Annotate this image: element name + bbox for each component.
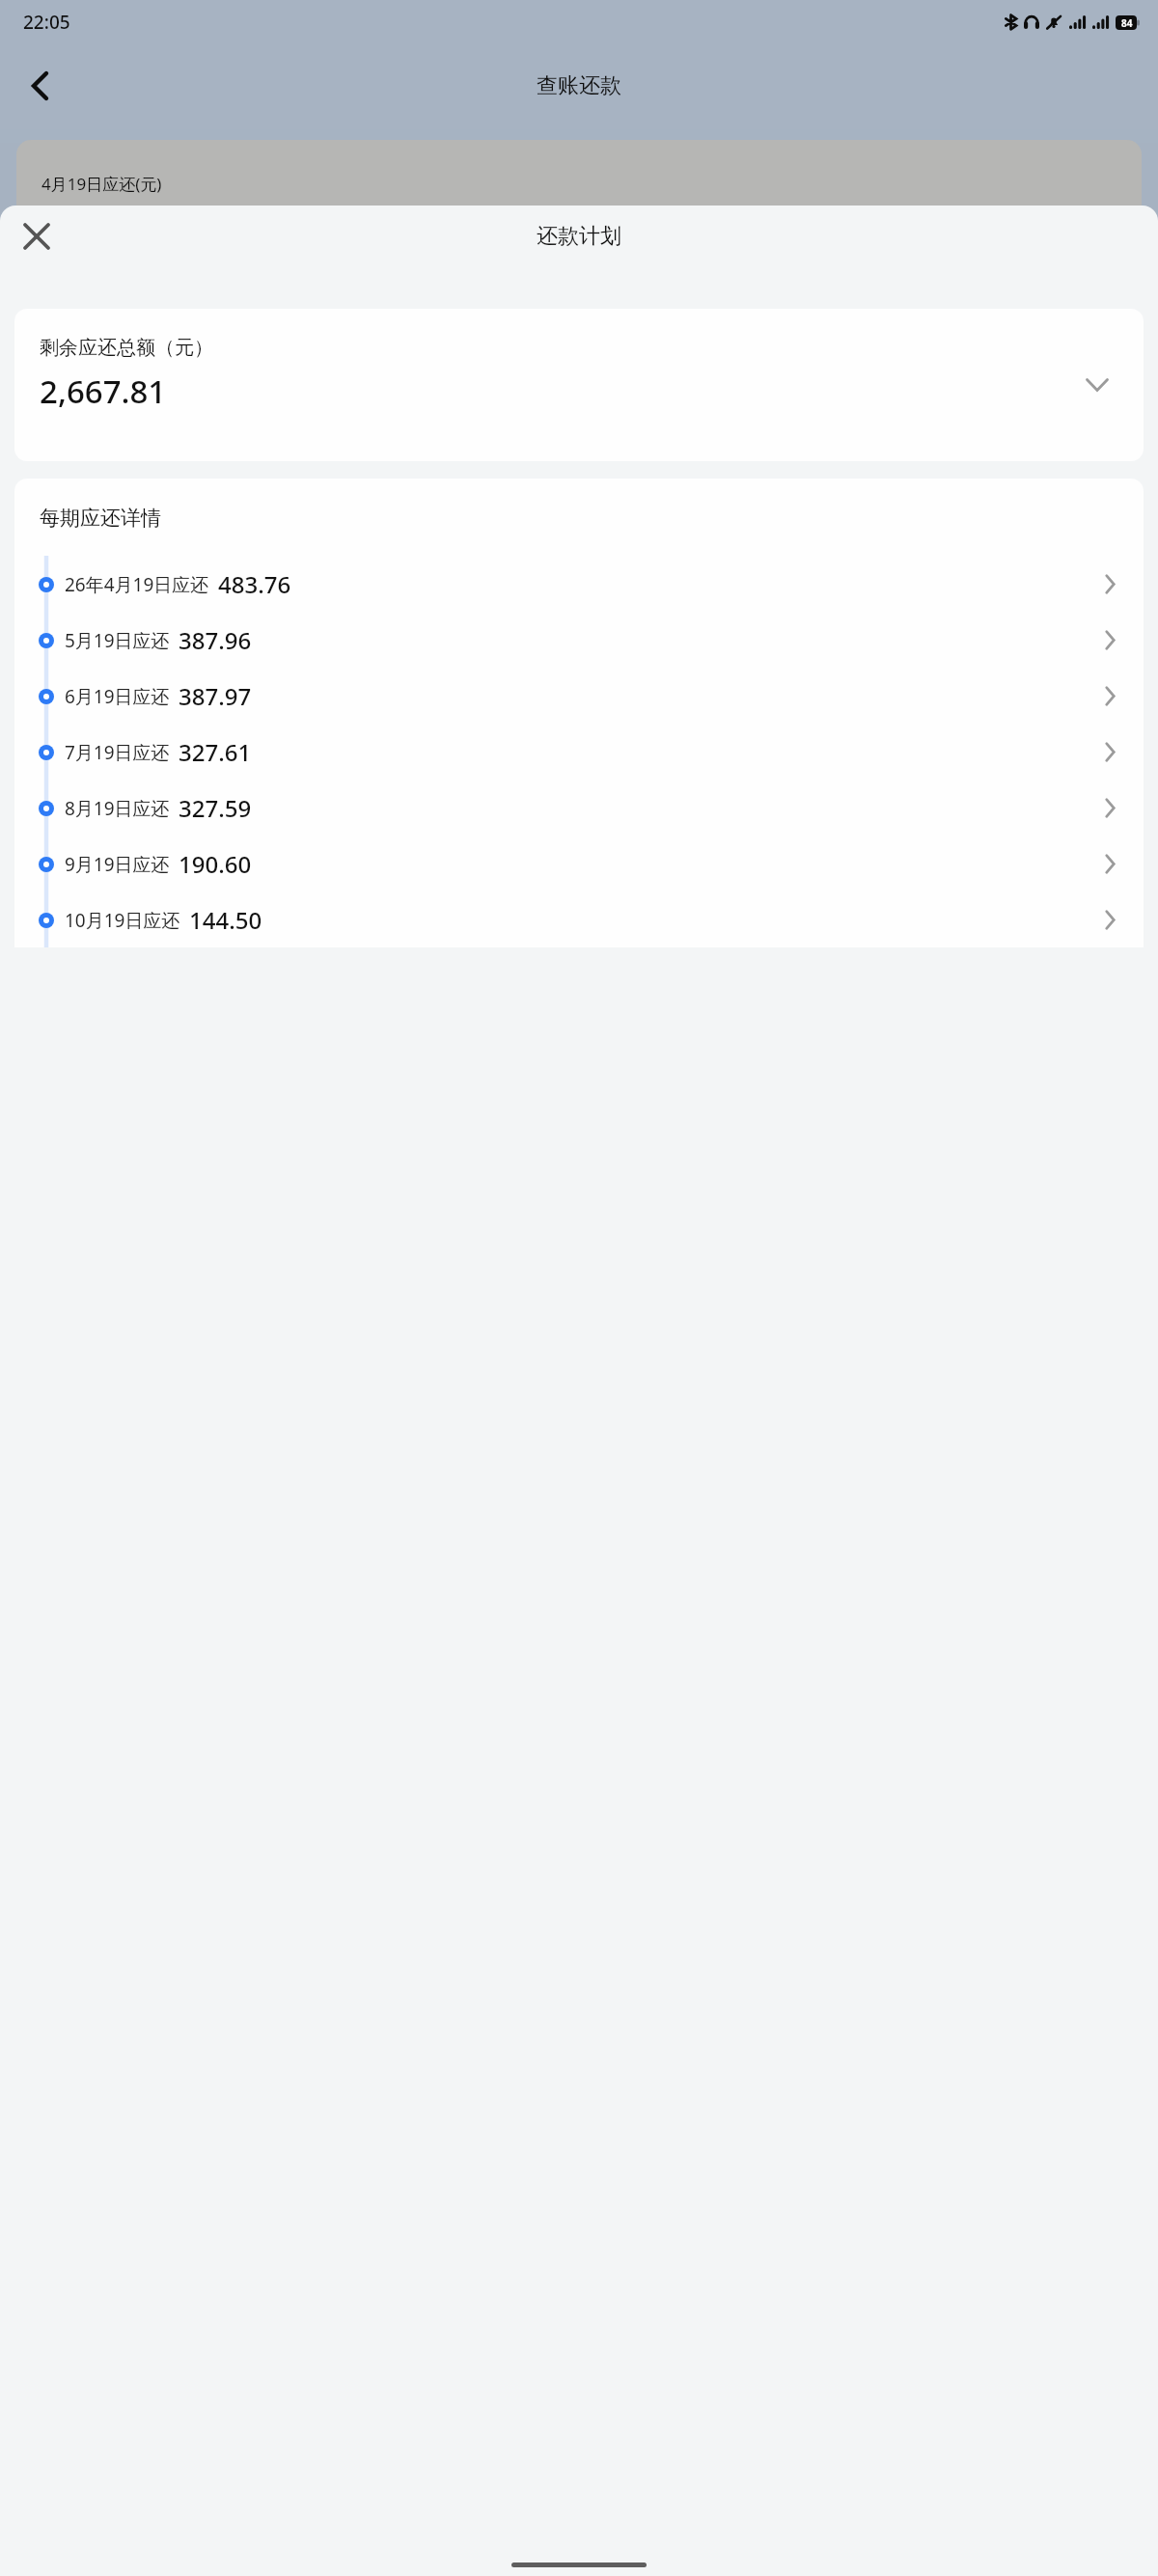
- button[interactable]: 8月19日应还: [14, 780, 1144, 836]
- staticText: 2,667.81: [40, 370, 167, 413]
- staticText: 9月19日应还: [65, 852, 170, 877]
- button[interactable]: 9月19日应还: [14, 836, 1144, 891]
- staticText: 5月19日应还: [65, 628, 170, 653]
- staticText: 387.96: [179, 624, 252, 656]
- staticText: 483.76: [218, 568, 291, 600]
- staticText: 387.97: [179, 680, 252, 712]
- button[interactable]: 10月19日应还: [14, 891, 1144, 947]
- button[interactable]: Close: [12, 211, 62, 261]
- staticText: 6月19日应还: [65, 684, 170, 709]
- staticText: 190.60: [179, 848, 252, 880]
- button[interactable]: 6月19日应还: [14, 668, 1144, 724]
- staticText: 84: [1121, 16, 1133, 30]
- button[interactable]: 26年4月19日应还: [14, 556, 1144, 612]
- staticText: 327.59: [179, 792, 252, 824]
- staticText: 10月19日应还: [65, 908, 180, 933]
- staticText: 144.50: [189, 904, 262, 936]
- staticText: 8月19日应还: [65, 796, 170, 821]
- staticText: 每期应还详情: [40, 506, 161, 531]
- button[interactable]: 5月19日应还: [14, 612, 1144, 668]
- staticText: 483.76: [41, 206, 178, 265]
- button[interactable]: 7月19日应还: [14, 724, 1144, 780]
- staticText: 26年4月19日应还: [65, 572, 209, 597]
- staticText: 327.61: [179, 736, 252, 768]
- staticText: 22:05: [23, 10, 70, 35]
- button[interactable]: Back: [12, 58, 68, 114]
- staticText: 7月19日应还: [65, 740, 170, 765]
- button[interactable]: 剩余应还总额（元）: [14, 309, 1144, 461]
- staticText: 还款计划: [537, 223, 621, 250]
- staticText: 查账还款: [537, 72, 621, 99]
- staticText: 4月19日应还(元): [41, 173, 162, 195]
- staticText: 剩余应还总额（元）: [40, 336, 213, 360]
